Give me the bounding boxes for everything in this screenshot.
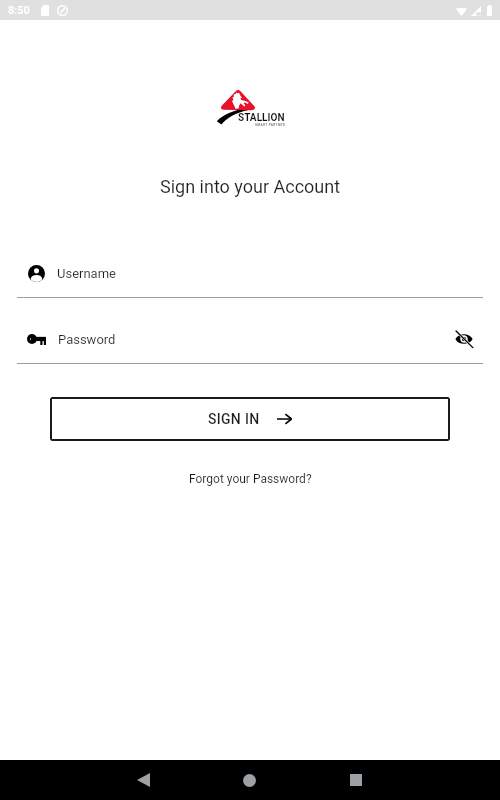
staticText: 8:50 bbox=[8, 4, 30, 17]
staticText: Password bbox=[58, 332, 116, 347]
button[interactable]: Home bbox=[229, 760, 269, 800]
button[interactable]: Username bbox=[17, 260, 483, 286]
staticText: Forgot your Password? bbox=[189, 472, 312, 486]
button[interactable]: Show password bbox=[451, 326, 477, 352]
staticText: STALLION bbox=[238, 112, 285, 124]
button[interactable]: Back bbox=[123, 760, 163, 800]
button[interactable]: SIGN IN bbox=[50, 397, 450, 441]
button[interactable]: Recent apps bbox=[336, 760, 376, 800]
staticText: SMART PARTNER bbox=[255, 123, 286, 127]
button[interactable]: Forgot your Password? bbox=[183, 470, 318, 488]
staticText: SIGN IN bbox=[208, 411, 260, 427]
staticText: Username bbox=[57, 266, 116, 281]
button[interactable]: Password bbox=[17, 326, 483, 352]
staticText: Sign into your Account bbox=[160, 176, 341, 197]
